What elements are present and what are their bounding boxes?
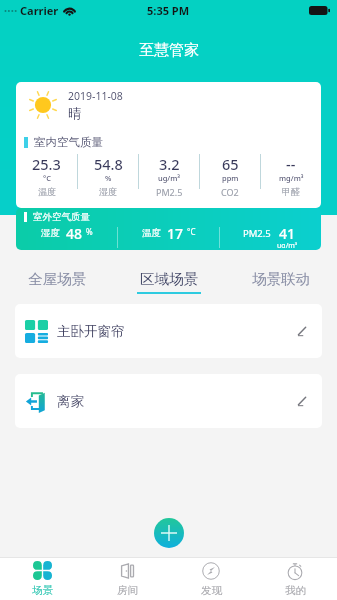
staticText: 3.2 <box>159 154 180 174</box>
staticText: 房间 <box>117 584 138 597</box>
button[interactable]: 区域场景 <box>113 258 225 302</box>
staticText: 65 <box>222 154 239 174</box>
staticText: 湿度 <box>99 186 117 197</box>
staticText: % <box>86 226 93 237</box>
button[interactable]: 我的 <box>253 558 337 600</box>
staticText: PM2.5 <box>156 186 183 198</box>
button[interactable]: Add scene <box>154 518 184 548</box>
staticText: ug/m³ <box>277 241 298 248</box>
staticText: % <box>105 173 112 183</box>
staticText: °C <box>43 173 51 183</box>
staticText: 17 <box>167 224 184 243</box>
button[interactable]: 房间 <box>85 558 169 600</box>
staticText: 54.8 <box>94 154 123 174</box>
staticText: 温度 <box>142 227 161 239</box>
staticText: 晴 <box>68 105 81 121</box>
staticText: 温度 <box>38 186 56 197</box>
staticText: 区域场景 <box>140 270 198 288</box>
staticText: 场景联动 <box>252 270 310 288</box>
button[interactable]: 发现 <box>169 558 253 600</box>
staticText: 离家 <box>57 393 84 410</box>
staticText: Carrier <box>20 3 59 18</box>
staticText: ppm <box>222 173 239 183</box>
staticText: 我的 <box>285 584 306 597</box>
button[interactable]: Edit <box>286 316 316 346</box>
staticText: 2019-11-08 <box>68 89 123 103</box>
button[interactable]: 主卧开窗帘 <box>15 304 322 358</box>
staticText: 室外空气质量 <box>33 211 90 223</box>
button[interactable]: 场景 <box>0 558 85 600</box>
button[interactable]: Edit <box>286 386 316 416</box>
staticText: mg/m³ <box>279 173 304 183</box>
staticText: °C <box>187 226 196 237</box>
staticText: PM2.5 <box>243 227 271 240</box>
staticText: 全屋场景 <box>28 270 86 288</box>
staticText: 湿度 <box>41 227 60 239</box>
staticText: 主卧开窗帘 <box>57 323 125 340</box>
staticText: 甲醛 <box>282 186 300 197</box>
staticText: 48 <box>66 224 83 243</box>
staticText: 5:35 PM <box>147 3 190 18</box>
staticText: 室内空气质量 <box>34 135 103 149</box>
button[interactable]: 场景联动 <box>225 258 337 302</box>
staticText: 发现 <box>201 584 222 597</box>
staticText: 25.3 <box>32 154 61 174</box>
staticText: CO2 <box>221 186 239 198</box>
staticText: -- <box>286 154 296 174</box>
staticText: 41 <box>279 224 296 243</box>
button[interactable]: 全屋场景 <box>0 258 113 302</box>
staticText: ug/m³ <box>158 173 181 183</box>
staticText: 场景 <box>32 584 53 597</box>
staticText: 至慧管家 <box>139 41 199 60</box>
button[interactable]: 离家 <box>15 374 322 428</box>
